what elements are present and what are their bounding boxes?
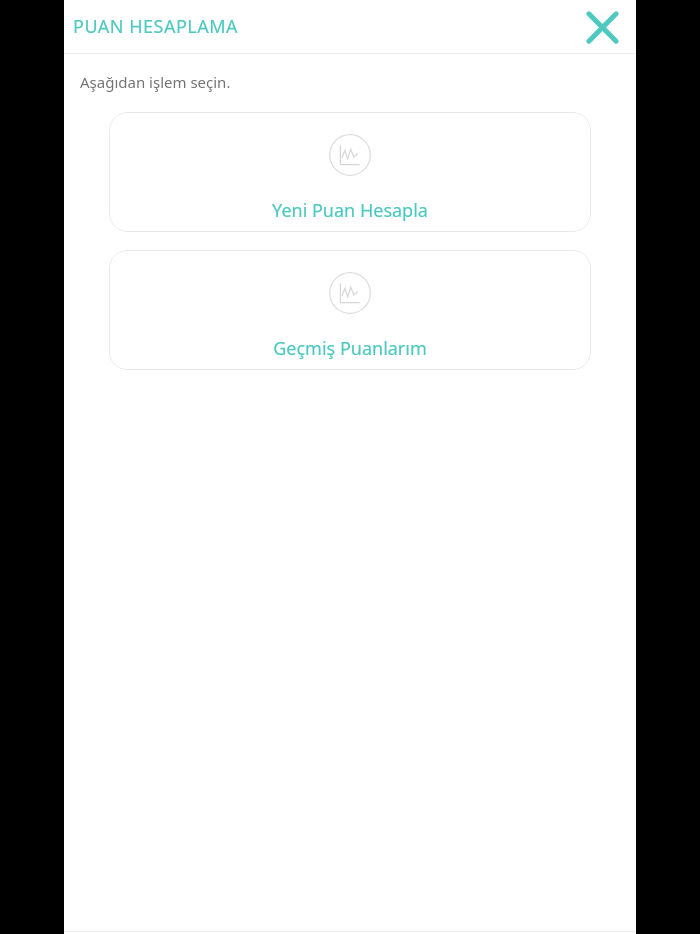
staticText: Aşağıdan işlem seçin.: [80, 72, 231, 92]
button[interactable]: Kapat: [579, 4, 625, 50]
staticText: Yeni Puan Hesapla: [272, 198, 428, 223]
button[interactable]: Yeni Puan Hesapla: [109, 112, 591, 232]
staticText: PUAN HESAPLAMA: [73, 14, 239, 39]
staticText: Geçmiş Puanlarım: [273, 336, 427, 361]
button[interactable]: Geçmiş Puanlarım: [109, 250, 591, 370]
